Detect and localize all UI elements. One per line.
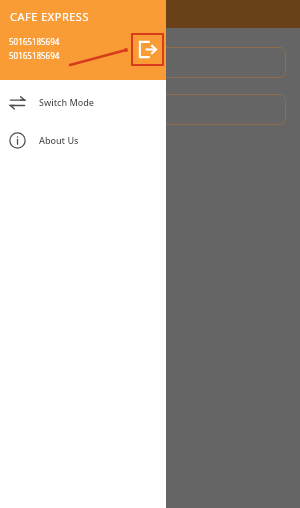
staticText: CAFE EXPRESS: [10, 9, 89, 24]
staticText: Switch Mode: [39, 96, 94, 108]
staticText: Cart (35 Items) >: [26, 55, 112, 70]
button[interactable]: Cart (35 Items) >: [14, 47, 286, 78]
button[interactable]: About Us: [0, 124, 166, 156]
button[interactable]: New Collection >: [14, 94, 286, 125]
button[interactable]: Switch Mode: [0, 86, 166, 118]
staticText: 50165185694: [9, 50, 60, 61]
staticText: 50165185694: [9, 36, 60, 47]
staticText: New Collection >: [26, 102, 113, 117]
staticText: About Us: [39, 134, 79, 146]
button[interactable]: Logout: [131, 33, 164, 66]
